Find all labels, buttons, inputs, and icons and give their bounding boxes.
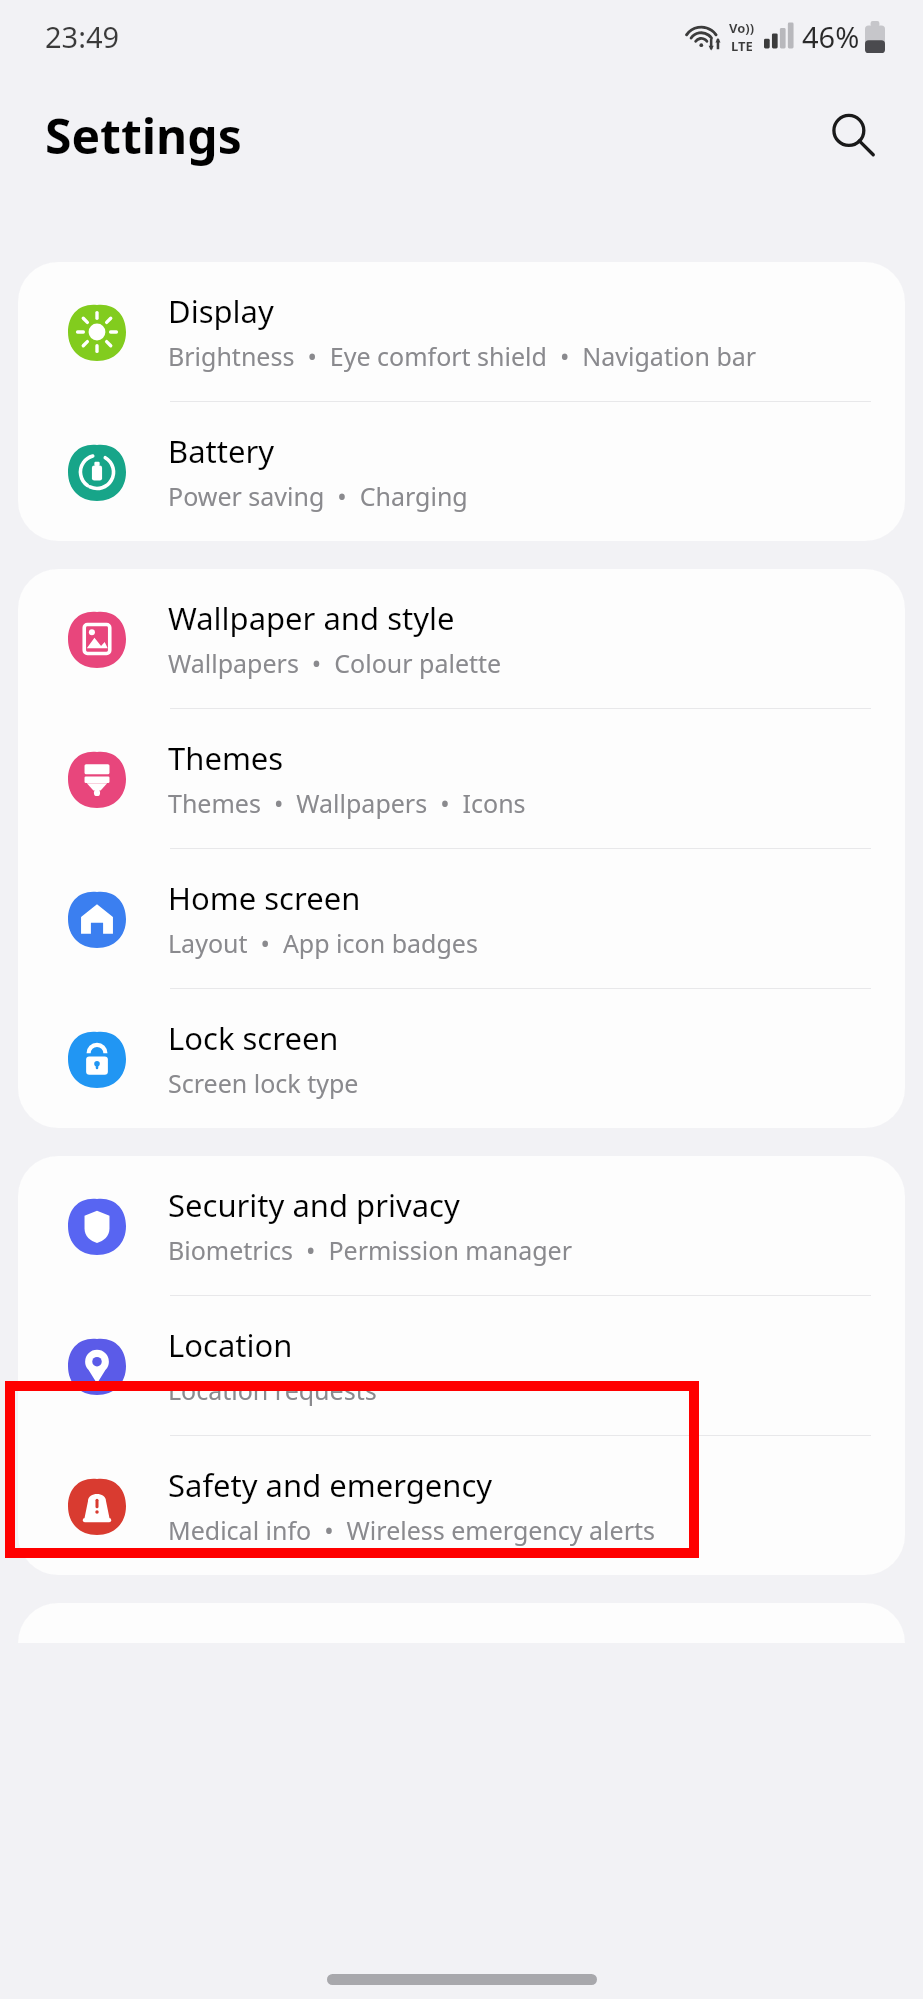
button[interactable]: Themes: [18, 709, 905, 848]
staticText: Home screen: [168, 877, 361, 919]
button[interactable]: Battery: [18, 402, 905, 541]
staticText: Screen lock type: [168, 1066, 359, 1100]
staticText: 46%: [802, 17, 860, 56]
button[interactable]: Security and privacy: [18, 1156, 905, 1295]
staticText: Brightness • Eye comfort shield • Naviga…: [168, 339, 757, 373]
button[interactable]: Location: [18, 1296, 905, 1435]
button[interactable]: Safety and emergency: [18, 1436, 905, 1575]
staticText: Themes • Wallpapers • Icons: [168, 786, 526, 820]
staticText: Battery: [168, 430, 275, 472]
staticText: Safety and emergency: [168, 1464, 493, 1506]
staticText: LTE: [731, 37, 753, 55]
staticText: Display: [168, 290, 274, 332]
button[interactable]: Home screen: [18, 849, 905, 988]
staticText: Vo)): [729, 19, 755, 37]
button[interactable]: Display: [18, 262, 905, 401]
staticText: Power saving • Charging: [168, 479, 468, 513]
button[interactable]: Wallpaper and style: [18, 569, 905, 708]
staticText: Layout • App icon badges: [168, 926, 478, 960]
staticText: Location requests: [168, 1373, 377, 1407]
staticText: Location: [168, 1324, 293, 1366]
button[interactable]: Lock screen: [18, 989, 905, 1128]
staticText: Themes: [168, 737, 284, 779]
staticText: Settings: [45, 103, 242, 168]
button[interactable]: Search: [818, 100, 888, 170]
staticText: Security and privacy: [168, 1184, 460, 1226]
staticText: 23:49: [45, 17, 120, 56]
staticText: Wallpaper and style: [168, 597, 455, 639]
staticText: Biometrics • Permission manager: [168, 1233, 573, 1267]
staticText: Lock screen: [168, 1017, 339, 1059]
staticText: Wallpapers • Colour palette: [168, 646, 502, 680]
staticText: Medical info • Wireless emergency alerts: [168, 1513, 655, 1547]
